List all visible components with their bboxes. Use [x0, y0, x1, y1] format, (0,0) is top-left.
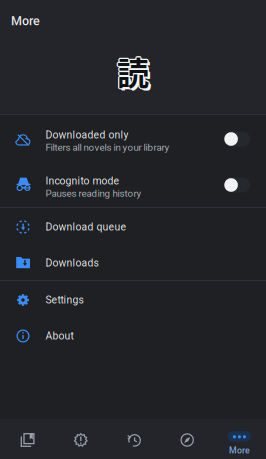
- button[interactable]: Library: [0, 419, 53, 459]
- staticText: 読: [118, 47, 150, 93]
- button[interactable]: Downloads: [0, 244, 266, 280]
- button[interactable]: Updates: [53, 419, 106, 459]
- button[interactable]: Browse: [160, 419, 213, 459]
- staticText: 読: [117, 48, 149, 94]
- staticText: More: [229, 445, 250, 455]
- staticText: More: [11, 14, 40, 28]
- staticText: 読: [118, 49, 150, 95]
- staticText: Filters all novels in your library: [45, 142, 169, 153]
- staticText: Downloads: [45, 257, 98, 269]
- button[interactable]: More: [213, 419, 266, 459]
- button[interactable]: Downloaded only: [0, 115, 266, 161]
- staticText: Settings: [45, 294, 83, 306]
- staticText: 読: [117, 47, 149, 93]
- staticText: Pauses reading history: [45, 188, 141, 199]
- staticText: Downloaded only: [45, 129, 128, 141]
- staticText: 読: [119, 50, 151, 96]
- staticText: 読: [116, 48, 148, 94]
- button[interactable]: Download queue: [0, 208, 266, 244]
- staticText: Download queue: [45, 221, 126, 233]
- button[interactable]: Settings: [0, 281, 266, 317]
- staticText: 読: [117, 49, 149, 95]
- staticText: 読: [118, 48, 150, 94]
- button[interactable]: Incognito mode: [0, 161, 266, 207]
- button[interactable]: About: [0, 317, 266, 353]
- staticText: About: [45, 330, 73, 342]
- staticText: 読: [118, 49, 150, 95]
- staticText: 読: [116, 49, 148, 95]
- staticText: 読: [116, 47, 148, 93]
- staticText: Incognito mode: [45, 175, 119, 187]
- button[interactable]: History: [106, 419, 160, 459]
- staticText: 読: [119, 50, 151, 96]
